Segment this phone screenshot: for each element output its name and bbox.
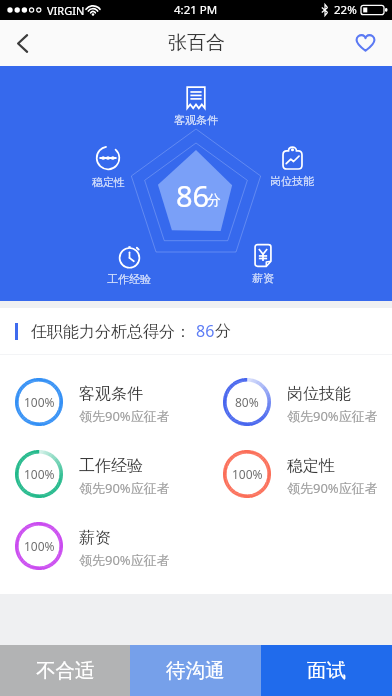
staticText: 22% bbox=[334, 2, 357, 18]
button[interactable]: 100% bbox=[223, 438, 392, 510]
button[interactable]: Back bbox=[0, 20, 44, 66]
staticText: 待沟通 bbox=[166, 658, 225, 683]
button[interactable]: 100% bbox=[15, 510, 184, 582]
staticText: 薪资 bbox=[79, 528, 111, 548]
staticText: VIRGIN bbox=[47, 3, 85, 18]
staticText: 稳定性 bbox=[287, 456, 335, 476]
staticText: 领先90%应征者 bbox=[79, 407, 170, 425]
button[interactable]: 80% bbox=[223, 366, 392, 438]
staticText: 不合适 bbox=[36, 658, 95, 683]
staticText: 领先90%应征者 bbox=[79, 479, 170, 497]
staticText: 工作经验 bbox=[107, 272, 151, 286]
staticText: 86 bbox=[196, 320, 215, 342]
button[interactable]: 不合适 bbox=[0, 645, 130, 696]
button[interactable]: 100% bbox=[15, 366, 184, 438]
staticText: 客观条件 bbox=[174, 113, 218, 127]
staticText: 100% bbox=[232, 466, 263, 482]
staticText: 4:21 PM bbox=[174, 2, 218, 18]
staticText: 领先90%应征者 bbox=[79, 551, 170, 569]
staticText: 岗位技能 bbox=[270, 174, 314, 188]
staticText: 客观条件 bbox=[79, 384, 143, 404]
staticText: 稳定性 bbox=[92, 175, 125, 189]
button[interactable]: 100% bbox=[15, 438, 184, 510]
staticText: 80% bbox=[235, 394, 259, 410]
staticText: 工作经验 bbox=[79, 456, 143, 476]
button[interactable]: 面试 bbox=[261, 645, 392, 696]
staticText: 领先90%应征者 bbox=[287, 479, 378, 497]
staticText: 100% bbox=[24, 466, 55, 482]
staticText: 分 bbox=[215, 321, 231, 341]
staticText: 面试 bbox=[307, 658, 346, 683]
staticText: 100% bbox=[24, 538, 55, 554]
staticText: 分 bbox=[207, 192, 221, 210]
button[interactable]: 待沟通 bbox=[130, 645, 261, 696]
button[interactable]: Favorite bbox=[338, 20, 392, 66]
staticText: 任职能力分析总得分： bbox=[31, 320, 196, 342]
staticText: 张百合 bbox=[168, 31, 225, 55]
staticText: 领先90%应征者 bbox=[287, 407, 378, 425]
staticText: 薪资 bbox=[252, 271, 274, 285]
staticText: 100% bbox=[24, 394, 55, 410]
staticText: 岗位技能 bbox=[287, 384, 351, 404]
staticText: 86 bbox=[176, 176, 210, 215]
